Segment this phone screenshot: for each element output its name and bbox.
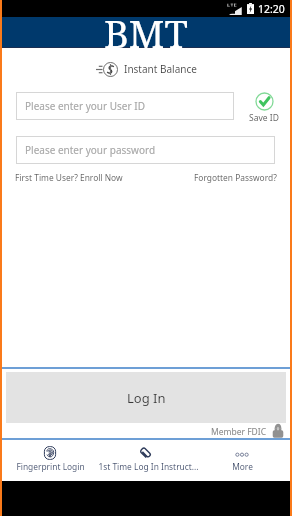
button[interactable]: Please enter your password [16,136,275,164]
staticText: Log In [127,389,166,407]
button[interactable]: Fingerprint Login [2,441,98,481]
button[interactable]: Instructions [98,441,194,481]
other: More [235,446,249,460]
other: Instructions [139,446,153,460]
staticText: Member FDIC [211,426,267,438]
staticText: Save ID [249,112,279,124]
staticText: Please enter your password [25,143,156,157]
staticText: Instant Balance [124,62,197,76]
staticText: More [232,461,253,472]
button[interactable]: Please enter your User ID [16,92,234,120]
staticText: BMT [104,7,188,51]
other: Fingerprint Login [43,446,57,460]
button[interactable]: First Time User? Enroll Now [15,172,123,183]
staticText: Fingerprint Login [16,461,85,472]
button[interactable]: Instant Balance [2,60,290,78]
staticText: 1st Time Log In Instruct... [98,461,194,472]
staticText: Please enter your User ID [25,99,145,113]
button[interactable]: More [194,441,290,481]
button[interactable]: Save ID [243,92,285,124]
button[interactable]: Forgotten Password? [194,172,277,183]
button[interactable]: Log In [6,372,286,423]
staticText: 12:20 [258,2,285,16]
